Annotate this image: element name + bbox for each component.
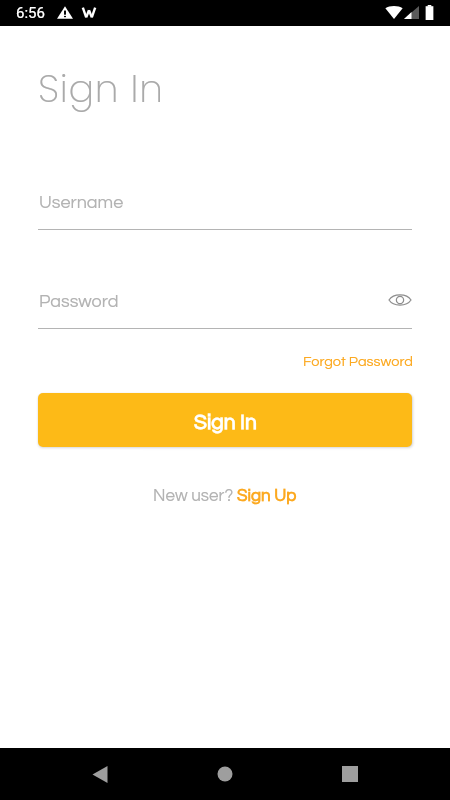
staticText: Sign In xyxy=(38,62,164,115)
staticText: Forgot Password xyxy=(303,354,413,369)
staticText: Username xyxy=(39,193,124,212)
button[interactable]: Back xyxy=(76,750,124,798)
button[interactable]: Sign In xyxy=(38,393,412,447)
button[interactable]: Forgot Password xyxy=(303,354,413,369)
button[interactable]: Recents xyxy=(326,750,374,798)
staticText: New user? xyxy=(153,487,237,505)
button[interactable]: Show password xyxy=(388,288,412,312)
staticText: Password xyxy=(39,292,119,311)
button[interactable]: Home xyxy=(201,750,249,798)
staticText: 6:56 xyxy=(16,4,45,22)
staticText: Sign In xyxy=(194,412,257,434)
button[interactable]: Sign Up xyxy=(237,487,297,505)
